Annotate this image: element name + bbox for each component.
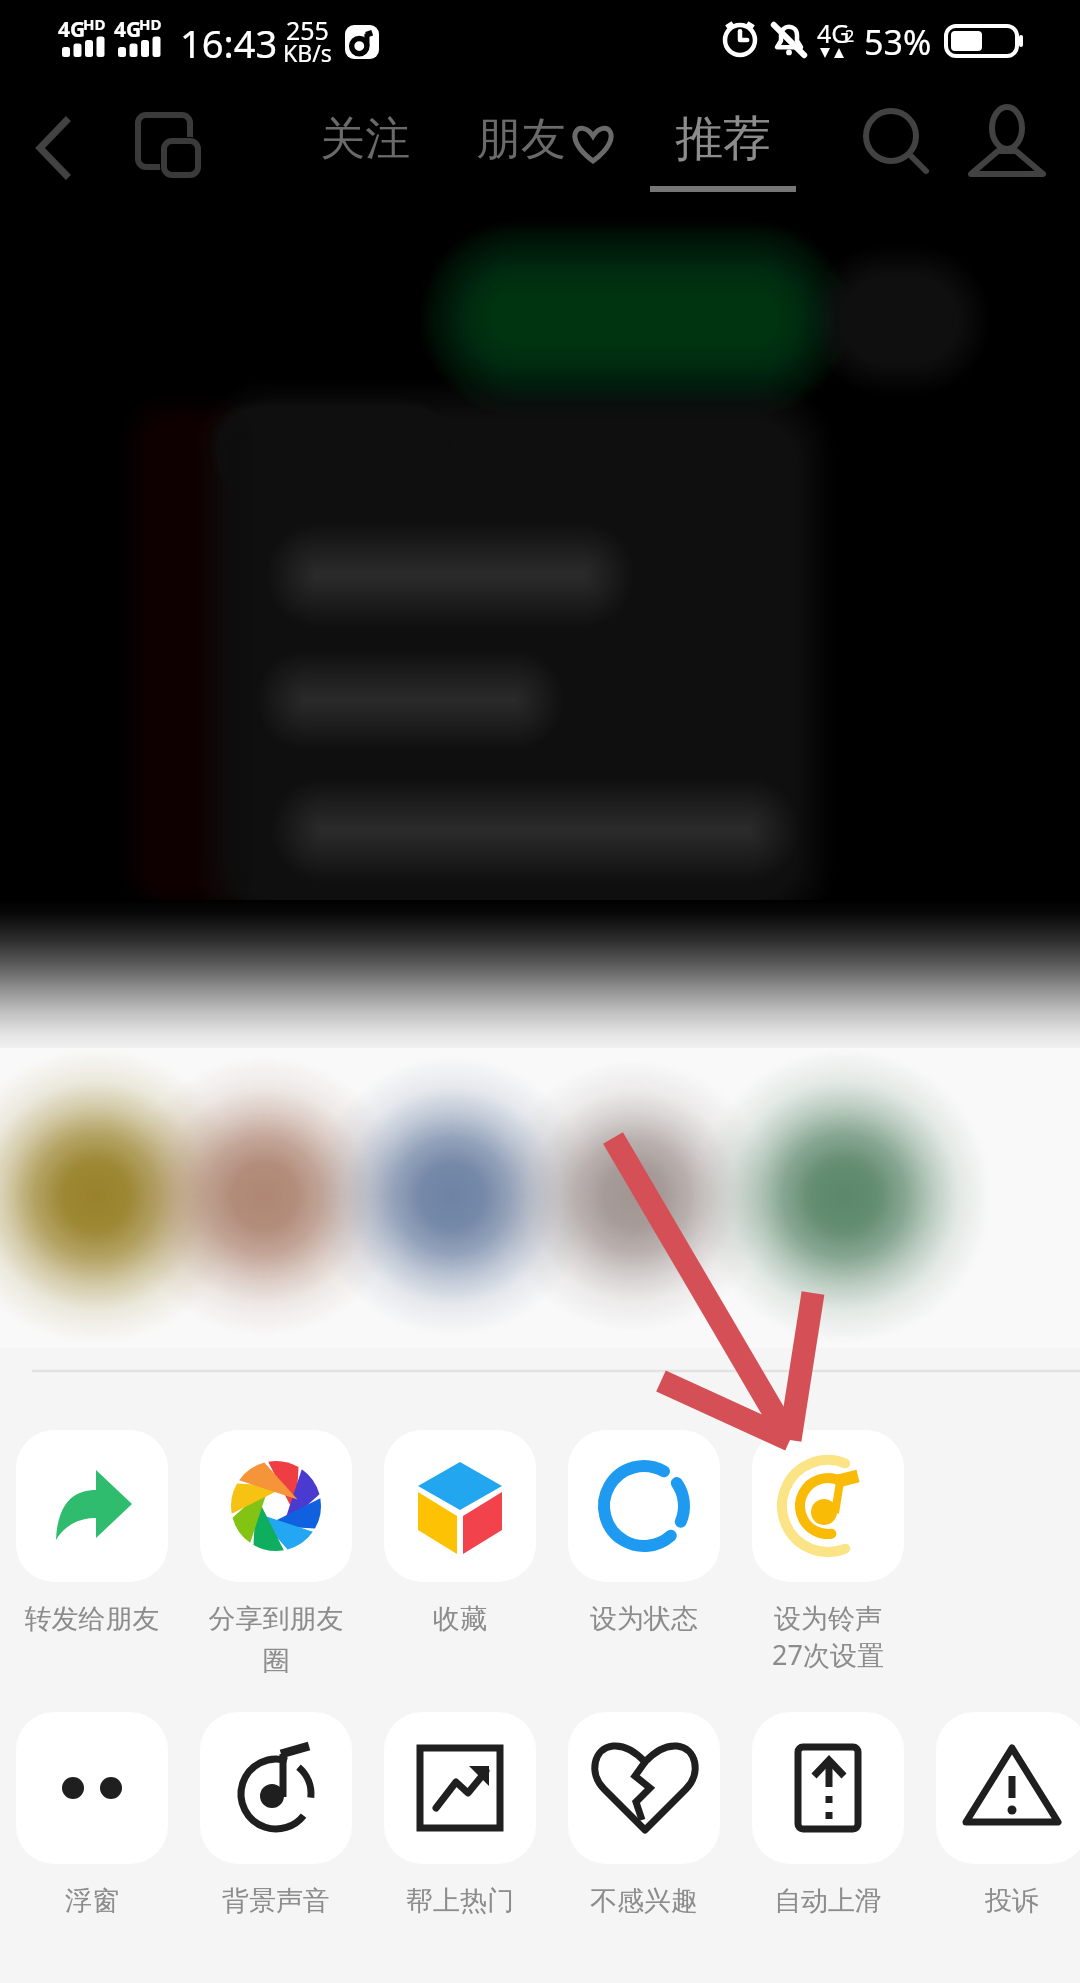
button[interactable]: 关注 xyxy=(306,101,424,178)
staticText: 朋友 xyxy=(476,111,566,168)
button[interactable]: 不感兴趣 xyxy=(568,1712,720,1918)
staticText: 背景声音 xyxy=(200,1884,352,1918)
staticText: 转发给朋友 xyxy=(16,1602,168,1636)
button[interactable]: 朋友 xyxy=(462,101,630,178)
staticText: 4G xyxy=(817,16,850,50)
staticText: KB/s xyxy=(283,37,332,68)
staticText: 帮上热门 xyxy=(384,1884,536,1918)
staticText: 不感兴趣 xyxy=(568,1884,720,1918)
staticText: 浮窗 xyxy=(16,1884,168,1918)
staticText: HD xyxy=(83,14,106,34)
staticText: 16:43 xyxy=(180,17,278,69)
staticText: 27次设置 xyxy=(752,1636,904,1673)
staticText: 推荐 xyxy=(675,109,771,169)
button[interactable]: 推荐 xyxy=(650,95,796,189)
button[interactable]: 设为铃声 xyxy=(752,1430,904,1673)
button[interactable]: Multi window xyxy=(126,103,206,183)
button[interactable]: Search xyxy=(856,101,934,179)
button[interactable]: 自动上滑 xyxy=(752,1712,904,1918)
staticText: 收藏 xyxy=(384,1602,536,1636)
staticText: 4G xyxy=(58,15,86,44)
staticText: 53% xyxy=(864,19,932,65)
staticText: 2 xyxy=(845,25,855,47)
staticText: 255 xyxy=(286,13,329,47)
button[interactable]: 浮窗 xyxy=(16,1712,168,1918)
staticText: 投诉 xyxy=(936,1884,1080,1918)
staticText: 自动上滑 xyxy=(752,1884,904,1918)
staticText: HD xyxy=(139,14,162,34)
button[interactable]: 分享到朋友圈 xyxy=(200,1430,352,1678)
button[interactable]: 帮上热门 xyxy=(384,1712,536,1918)
button[interactable]: 设为状态 xyxy=(568,1430,720,1636)
staticText: 设为状态 xyxy=(568,1602,720,1636)
button[interactable]: 收藏 xyxy=(384,1430,536,1636)
button[interactable]: Back xyxy=(18,103,98,183)
button[interactable]: 转发给朋友 xyxy=(16,1430,168,1636)
button[interactable]: 背景声音 xyxy=(200,1712,352,1918)
staticText: 关注 xyxy=(320,111,410,168)
staticText: 分享到朋友圈 xyxy=(200,1602,352,1678)
staticText: 设为铃声 xyxy=(752,1602,904,1636)
button[interactable]: 投诉 xyxy=(936,1712,1080,1918)
button[interactable]: Profile xyxy=(966,101,1044,179)
staticText: 4G xyxy=(114,15,142,44)
